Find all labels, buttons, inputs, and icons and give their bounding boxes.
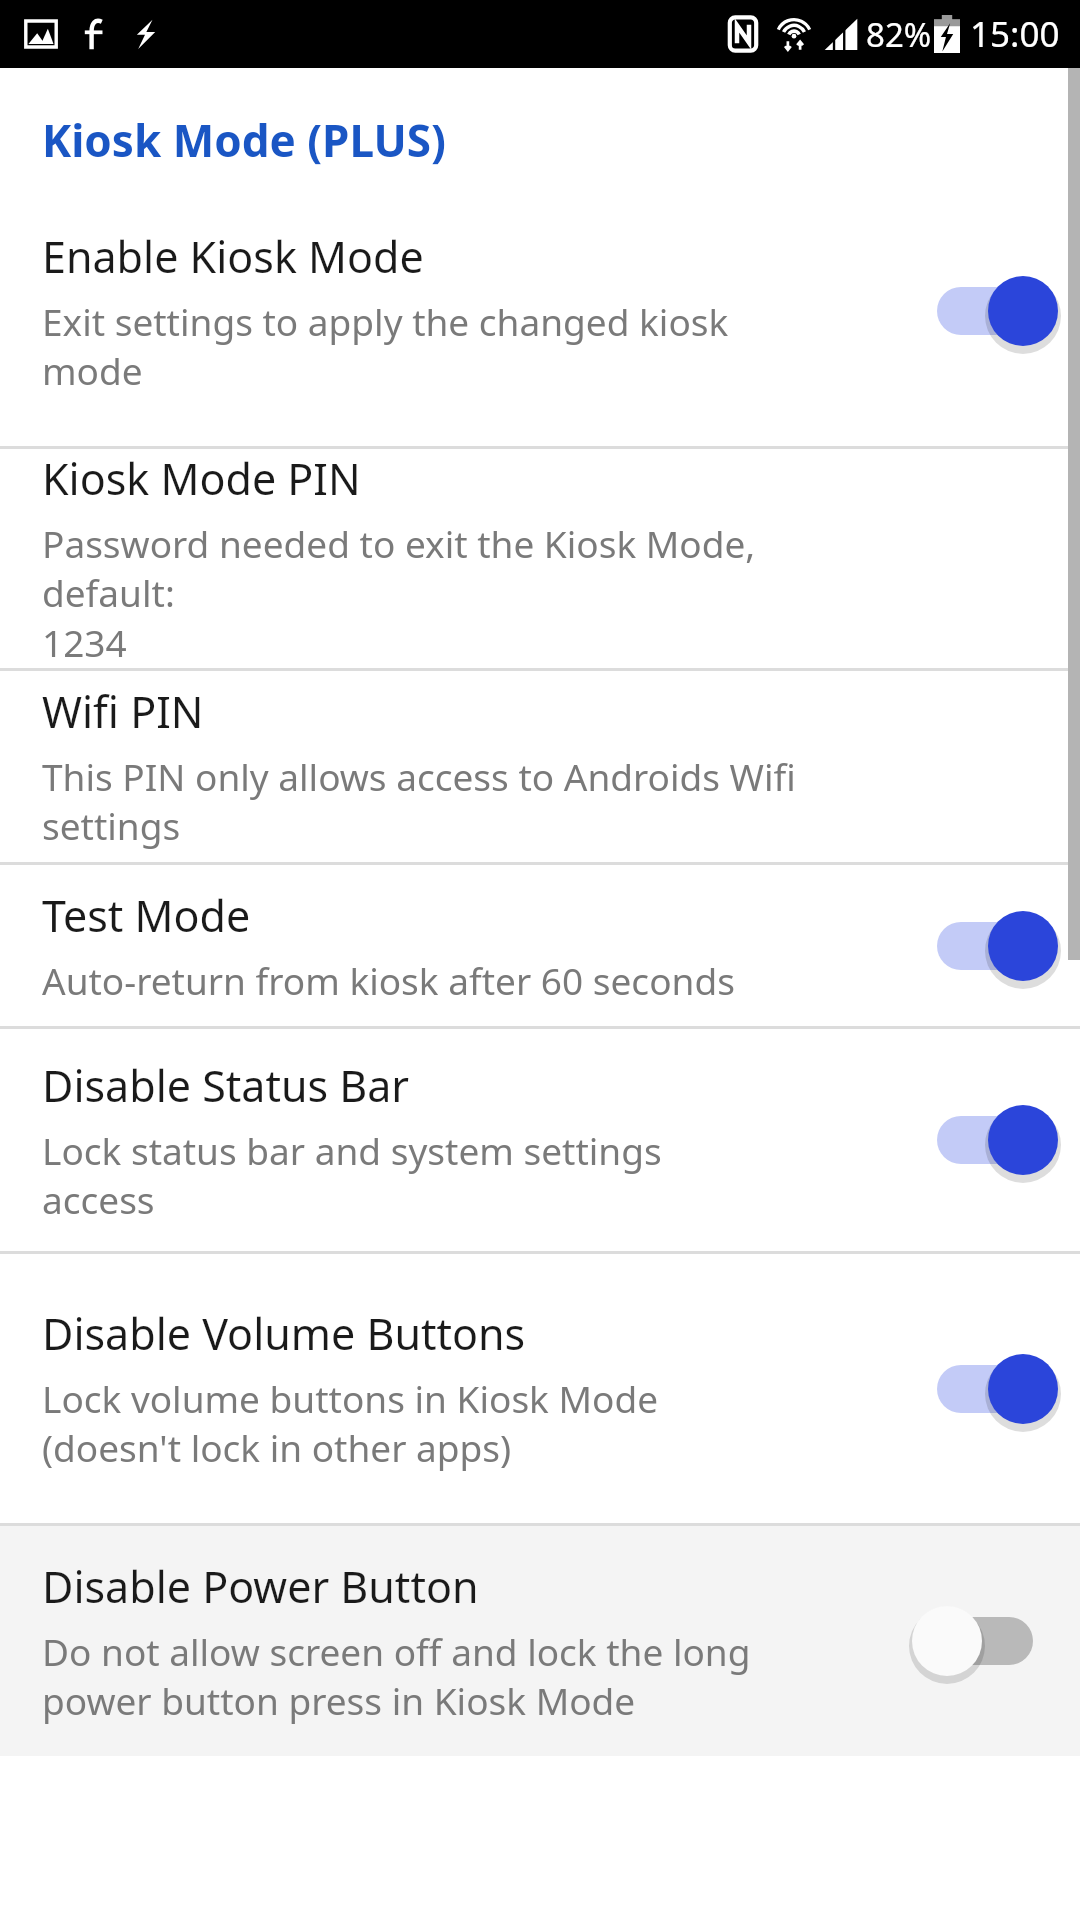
staticText: 82% — [866, 12, 932, 57]
button[interactable]: Disable Power Button — [0, 1526, 1080, 1756]
button[interactable]: Wifi PIN — [0, 671, 1080, 862]
staticText: Lock status bar and system settings acce… — [42, 1125, 662, 1225]
button[interactable]: Disable Status Bar — [0, 1029, 1080, 1251]
button[interactable]: Toggle on — [919, 1347, 1051, 1431]
staticText: Disable Power Button — [42, 1557, 479, 1616]
staticText: This PIN only allows access to Androids … — [42, 751, 874, 851]
staticText: Exit settings to apply the changed kiosk… — [42, 296, 729, 396]
staticText: Lock volume buttons in Kiosk Mode (doesn… — [42, 1373, 659, 1473]
staticText: Disable Volume Buttons — [42, 1304, 526, 1363]
button[interactable]: Disable Volume Buttons — [0, 1254, 1080, 1523]
staticText: Disable Status Bar — [42, 1056, 410, 1115]
staticText: Enable Kiosk Mode — [42, 227, 424, 286]
staticText: Password needed to exit the Kiosk Mode, … — [42, 518, 874, 668]
button[interactable]: Kiosk Mode PIN — [0, 449, 1080, 668]
staticText: Test Mode — [42, 886, 251, 945]
button[interactable]: Toggle on — [919, 1098, 1051, 1182]
staticText: 15:00 — [970, 10, 1060, 58]
staticText: Kiosk Mode PIN — [42, 449, 361, 508]
staticText: Do not allow screen off and lock the lon… — [42, 1626, 751, 1726]
button[interactable]: Test Mode — [0, 865, 1080, 1026]
staticText: Auto-return from kiosk after 60 seconds — [42, 955, 735, 1005]
button[interactable]: Toggle on — [919, 904, 1051, 988]
button[interactable]: Enable Kiosk Mode — [0, 176, 1080, 446]
button[interactable]: Toggle on — [919, 269, 1051, 353]
staticText: Wifi PIN — [42, 682, 204, 741]
staticText: Kiosk Mode (PLUS) — [42, 110, 447, 170]
button[interactable]: Toggle off — [919, 1599, 1051, 1683]
